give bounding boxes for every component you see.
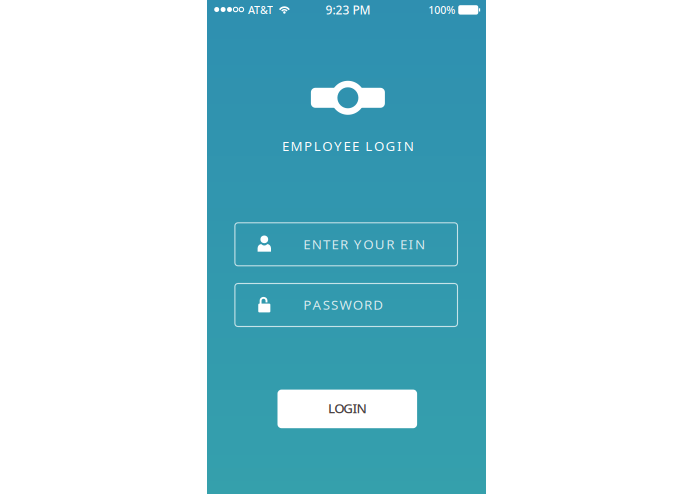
staticText: 9:23 PM (325, 2, 370, 18)
staticText: P A S S W O R D (303, 296, 383, 313)
staticText: 100% (428, 3, 455, 17)
staticText: LOGIN (328, 399, 366, 417)
button[interactable]: P A S S W O R D (235, 283, 457, 326)
staticText: AT&T (248, 3, 273, 17)
button[interactable]: E N T E R Y O U R E I N (235, 223, 457, 266)
staticText: E N T E R Y O U R E I N (303, 235, 425, 253)
button[interactable]: LOGIN (277, 390, 417, 428)
staticText: E M P L O Y E E L O G I N (282, 137, 414, 155)
